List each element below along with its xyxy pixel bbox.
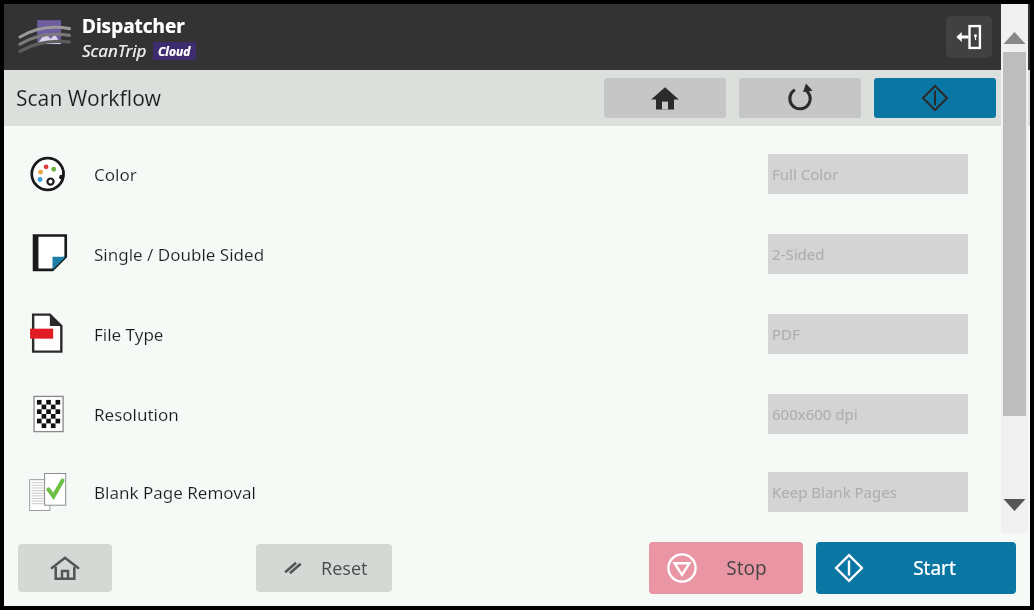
staticText: Keep Blank Pages <box>772 482 897 502</box>
button[interactable]: Refresh <box>739 78 861 118</box>
button[interactable]: Single / Double Sided <box>4 214 1030 294</box>
staticText: Reset <box>321 556 368 581</box>
staticText: Single / Double Sided <box>94 243 265 266</box>
staticText: Color <box>94 163 137 186</box>
staticText: ScanTrip <box>82 39 147 62</box>
button[interactable]: Stop <box>649 542 803 594</box>
button[interactable]: Home <box>604 78 726 118</box>
staticText: Dispatcher <box>82 13 185 39</box>
button[interactable]: Log out <box>946 16 992 58</box>
staticText: Stop <box>726 555 767 581</box>
staticText: File Type <box>94 323 164 346</box>
staticText: PDF <box>772 324 800 344</box>
button[interactable]: Resolution <box>4 374 1030 454</box>
staticText: Full Color <box>772 164 839 184</box>
staticText: Scan Workflow <box>16 84 161 113</box>
button[interactable]: Color <box>4 134 1030 214</box>
button[interactable]: File Type <box>4 294 1030 374</box>
button[interactable]: Start <box>816 542 1016 594</box>
button[interactable]: Start scan <box>874 78 996 118</box>
staticText: 2-Sided <box>772 244 825 264</box>
staticText: Start <box>913 555 956 581</box>
button[interactable]: Blank Page Removal <box>4 454 1030 530</box>
staticText: 600x600 dpi <box>772 404 858 424</box>
button[interactable]: Home <box>18 544 112 592</box>
button[interactable]: Reset <box>256 544 392 592</box>
staticText: Resolution <box>94 403 179 426</box>
staticText: Blank Page Removal <box>94 481 256 504</box>
staticText: Cloud <box>158 43 191 59</box>
